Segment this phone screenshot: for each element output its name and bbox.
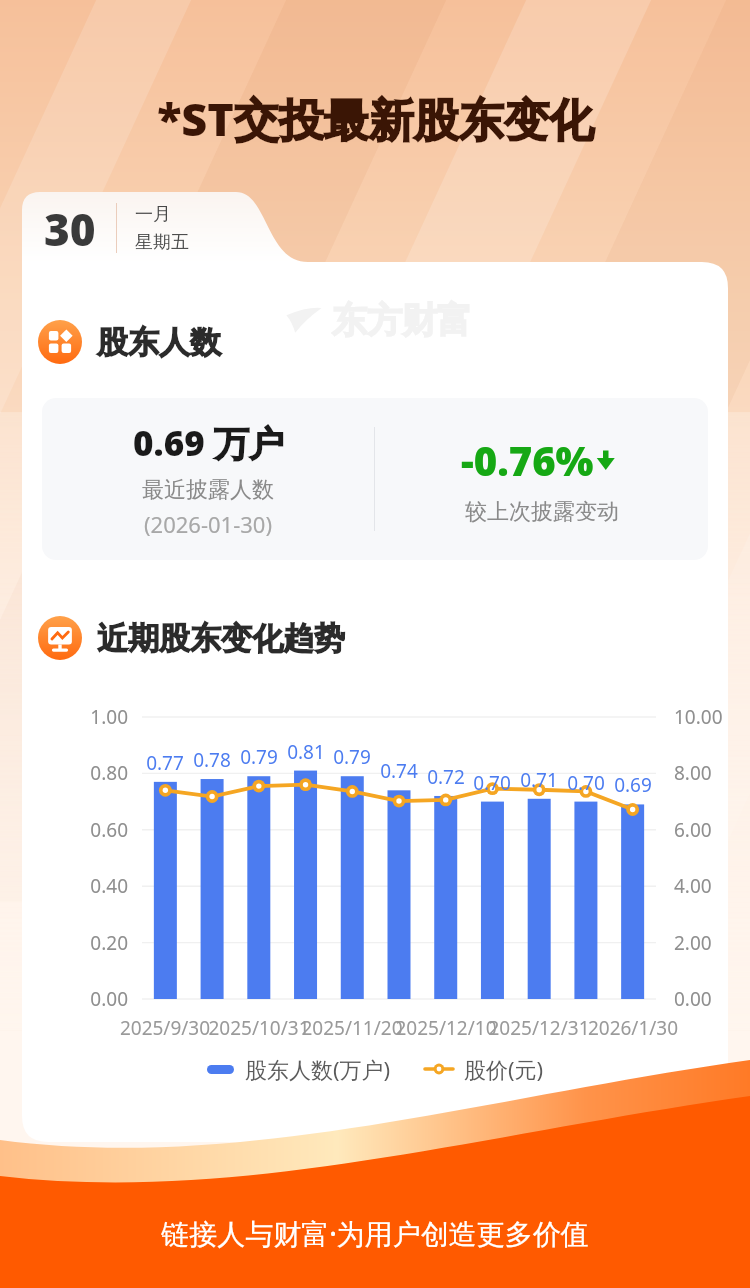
- button[interactable]: 股东人数: [38, 320, 221, 364]
- button[interactable]: 0.69 万户: [42, 398, 708, 560]
- staticText: (2026-01-30): [144, 509, 273, 539]
- staticText: 4.00: [674, 873, 712, 899]
- staticText: 2025/12/10: [388, 1015, 504, 1041]
- button[interactable]: 近期股东变化趋势: [38, 616, 345, 660]
- other: 近期股东变化趋势: [38, 616, 82, 660]
- staticText: 0.40: [66, 873, 128, 899]
- other: 股东人数: [38, 320, 82, 364]
- staticText: 0.81: [282, 739, 330, 765]
- staticText: 8.00: [674, 760, 712, 786]
- staticText: 2025/10/31: [201, 1015, 317, 1041]
- staticText: 2025/12/31: [481, 1015, 597, 1041]
- staticText: 0.74: [375, 758, 423, 784]
- staticText: 近期股东变化趋势: [97, 619, 345, 658]
- staticText: 0.77: [141, 750, 189, 776]
- staticText: -0.76%: [461, 433, 594, 487]
- staticText: 2025/9/30: [107, 1015, 223, 1041]
- staticText: 链接人与财富·为用户创造更多价值: [0, 1214, 750, 1252]
- staticText: 0.60: [66, 817, 128, 843]
- staticText: 0.00: [66, 986, 128, 1012]
- staticText: 0.00: [674, 986, 712, 1012]
- staticText: 星期五: [135, 231, 189, 254]
- staticText: 0.71: [515, 767, 563, 793]
- staticText: 股价(元): [464, 1054, 544, 1084]
- staticText: 0.80: [66, 760, 128, 786]
- staticText: 0.79: [235, 744, 283, 770]
- staticText: 2.00: [674, 930, 712, 956]
- staticText: 较上次披露变动: [465, 498, 619, 526]
- staticText: 10.00: [674, 704, 723, 730]
- staticText: 1.00: [66, 704, 128, 730]
- staticText: 0.20: [66, 930, 128, 956]
- staticText: 最近披露人数: [142, 476, 274, 504]
- button[interactable]: 股东人数(万户): [207, 1054, 391, 1084]
- staticText: 东方财富: [332, 298, 472, 342]
- staticText: 0.70: [562, 770, 610, 796]
- staticText: 30: [44, 199, 96, 257]
- staticText: 2026/1/30: [575, 1015, 691, 1041]
- staticText: 0.78: [188, 747, 236, 773]
- button[interactable]: 股价(元): [425, 1054, 544, 1084]
- staticText: 股东人数: [97, 323, 221, 362]
- staticText: *ST交投最新股东变化: [157, 88, 594, 149]
- button[interactable]: 30: [44, 199, 189, 257]
- staticText: 0.69: [609, 772, 657, 798]
- staticText: 0.69 万户: [133, 419, 284, 467]
- staticText: 0.72: [422, 764, 470, 790]
- staticText: 一月: [135, 203, 171, 226]
- staticText: 股东人数(万户): [245, 1054, 391, 1084]
- staticText: 6.00: [674, 817, 712, 843]
- staticText: 0.79: [328, 744, 376, 770]
- staticText: 0.70: [468, 770, 516, 796]
- staticText: 2025/11/20: [294, 1015, 410, 1041]
